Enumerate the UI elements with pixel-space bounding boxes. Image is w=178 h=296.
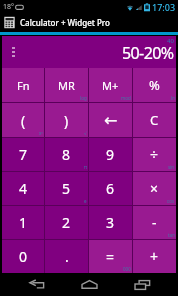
staticText: e — [84, 198, 87, 204]
staticText: cos — [167, 198, 175, 204]
staticText: Calculator + Widget Pro — [20, 17, 110, 28]
staticText: tan — [168, 232, 175, 238]
staticText: MR — [58, 78, 75, 93]
button[interactable]: Recent apps — [122, 273, 162, 296]
staticText: √ — [84, 131, 87, 136]
button[interactable]: 0 — [2, 240, 44, 273]
button[interactable]: ) — [45, 103, 88, 137]
button[interactable]: + — [133, 240, 176, 273]
button[interactable]: 7 — [2, 138, 44, 171]
staticText: 3 — [106, 213, 115, 232]
staticText: 9 — [106, 145, 115, 164]
staticText: % — [149, 76, 160, 94]
button[interactable]: More options — [12, 47, 15, 57]
button[interactable]: M+ — [89, 68, 132, 102]
staticText: ( — [21, 111, 26, 130]
button[interactable]: % — [133, 68, 176, 102]
staticText: ÷ — [150, 145, 159, 164]
button[interactable]: = — [89, 240, 132, 273]
button[interactable]: . — [45, 240, 88, 273]
button[interactable]: × — [133, 172, 176, 205]
button[interactable]: Home — [69, 273, 109, 296]
staticText: 5 — [62, 179, 71, 198]
staticText: ln — [171, 95, 175, 101]
staticText: Fn — [17, 78, 30, 93]
button[interactable]: 1 — [2, 206, 44, 239]
staticText: 17:03 — [152, 1, 176, 13]
staticText: π — [84, 164, 87, 170]
staticText: C — [150, 111, 159, 129]
staticText: 4 — [19, 179, 28, 198]
staticText: 0 — [19, 247, 28, 266]
button[interactable]: Back — [17, 273, 57, 296]
button[interactable]: 8 — [45, 138, 88, 171]
staticText: 2 — [62, 213, 71, 232]
button[interactable]: 4 — [2, 172, 44, 205]
staticText: ) — [64, 111, 69, 130]
button[interactable]: MR — [45, 68, 88, 102]
staticText: ← — [104, 111, 118, 130]
staticText: - — [152, 213, 157, 232]
staticText: × — [150, 179, 159, 198]
staticText: . — [65, 247, 69, 266]
button[interactable]: 2 — [45, 206, 88, 239]
button[interactable]: ÷ — [133, 138, 176, 171]
staticText: + — [150, 247, 159, 266]
button[interactable]: - — [133, 206, 176, 239]
staticText: 18° — [3, 2, 15, 12]
button[interactable]: 6 — [89, 172, 132, 205]
staticText: = — [106, 247, 115, 266]
button[interactable]: 9 — [89, 138, 132, 171]
button[interactable]: 5 — [45, 172, 88, 205]
staticText: 000 — [123, 266, 131, 272]
staticText: sin — [168, 164, 175, 170]
staticText: 6 — [106, 179, 115, 198]
staticText: 7 — [19, 145, 28, 164]
staticText: 8 — [62, 145, 71, 164]
button[interactable]: ( — [2, 103, 44, 137]
button[interactable]: 3 — [89, 206, 132, 239]
staticText: 50-20% — [122, 42, 174, 64]
staticText: mod — [121, 95, 131, 101]
staticText: 40 — [167, 37, 174, 45]
staticText: log — [80, 95, 87, 101]
button[interactable]: Fn — [2, 68, 44, 102]
button[interactable]: ← — [89, 103, 132, 137]
staticText: 1 — [19, 213, 28, 232]
staticText: M+ — [102, 78, 119, 93]
staticText: xʸ — [39, 130, 43, 136]
button[interactable]: C — [133, 103, 176, 137]
